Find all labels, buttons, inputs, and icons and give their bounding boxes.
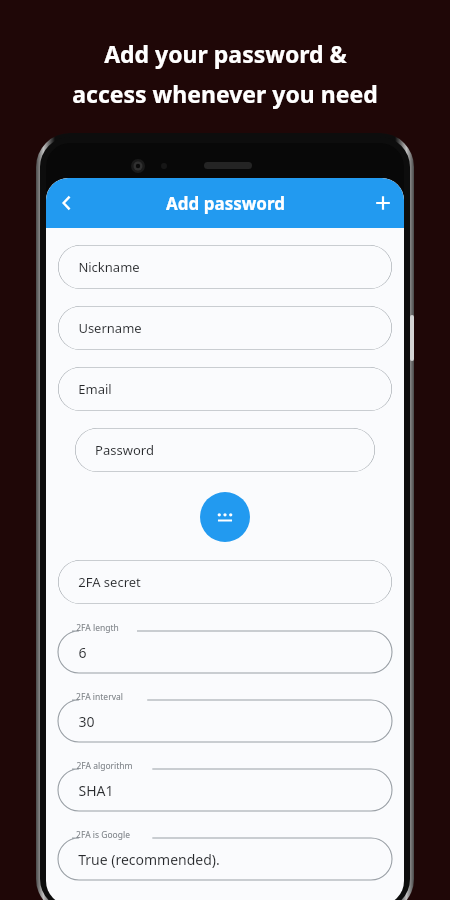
- button[interactable]: 2FA interval: [58, 690, 392, 742]
- staticText: Username: [78, 319, 142, 337]
- button[interactable]: Email: [58, 367, 392, 411]
- staticText: 2FA length: [76, 622, 119, 634]
- staticText: 2FA secret: [78, 573, 141, 591]
- button[interactable]: 2FA is Google: [58, 828, 392, 880]
- button[interactable]: 2FA length: [58, 621, 392, 673]
- staticText: Nickname: [78, 258, 140, 276]
- staticText: 30: [78, 712, 95, 731]
- staticText: Email: [78, 380, 112, 398]
- button[interactable]: Username: [58, 306, 392, 350]
- button[interactable]: Add: [362, 182, 404, 224]
- button[interactable]: Back: [46, 182, 88, 224]
- button[interactable]: 2FA algorithm: [58, 759, 392, 811]
- staticText: 6: [78, 643, 87, 662]
- staticText: 2FA algorithm: [76, 760, 133, 772]
- staticText: 2FA is Google: [76, 829, 130, 841]
- staticText: Add your password &: [104, 38, 347, 69]
- button[interactable]: Nickname: [58, 245, 392, 289]
- button[interactable]: Password: [75, 428, 375, 472]
- staticText: Password: [95, 441, 154, 459]
- staticText: SHA1: [78, 781, 114, 800]
- button[interactable]: 2FA secret: [58, 560, 392, 604]
- staticText: Add password: [166, 192, 285, 215]
- button[interactable]: Generate password: [200, 492, 250, 542]
- staticText: 2FA interval: [76, 691, 123, 703]
- staticText: True (recommended).: [78, 850, 220, 869]
- staticText: access whenever you need: [72, 78, 378, 109]
